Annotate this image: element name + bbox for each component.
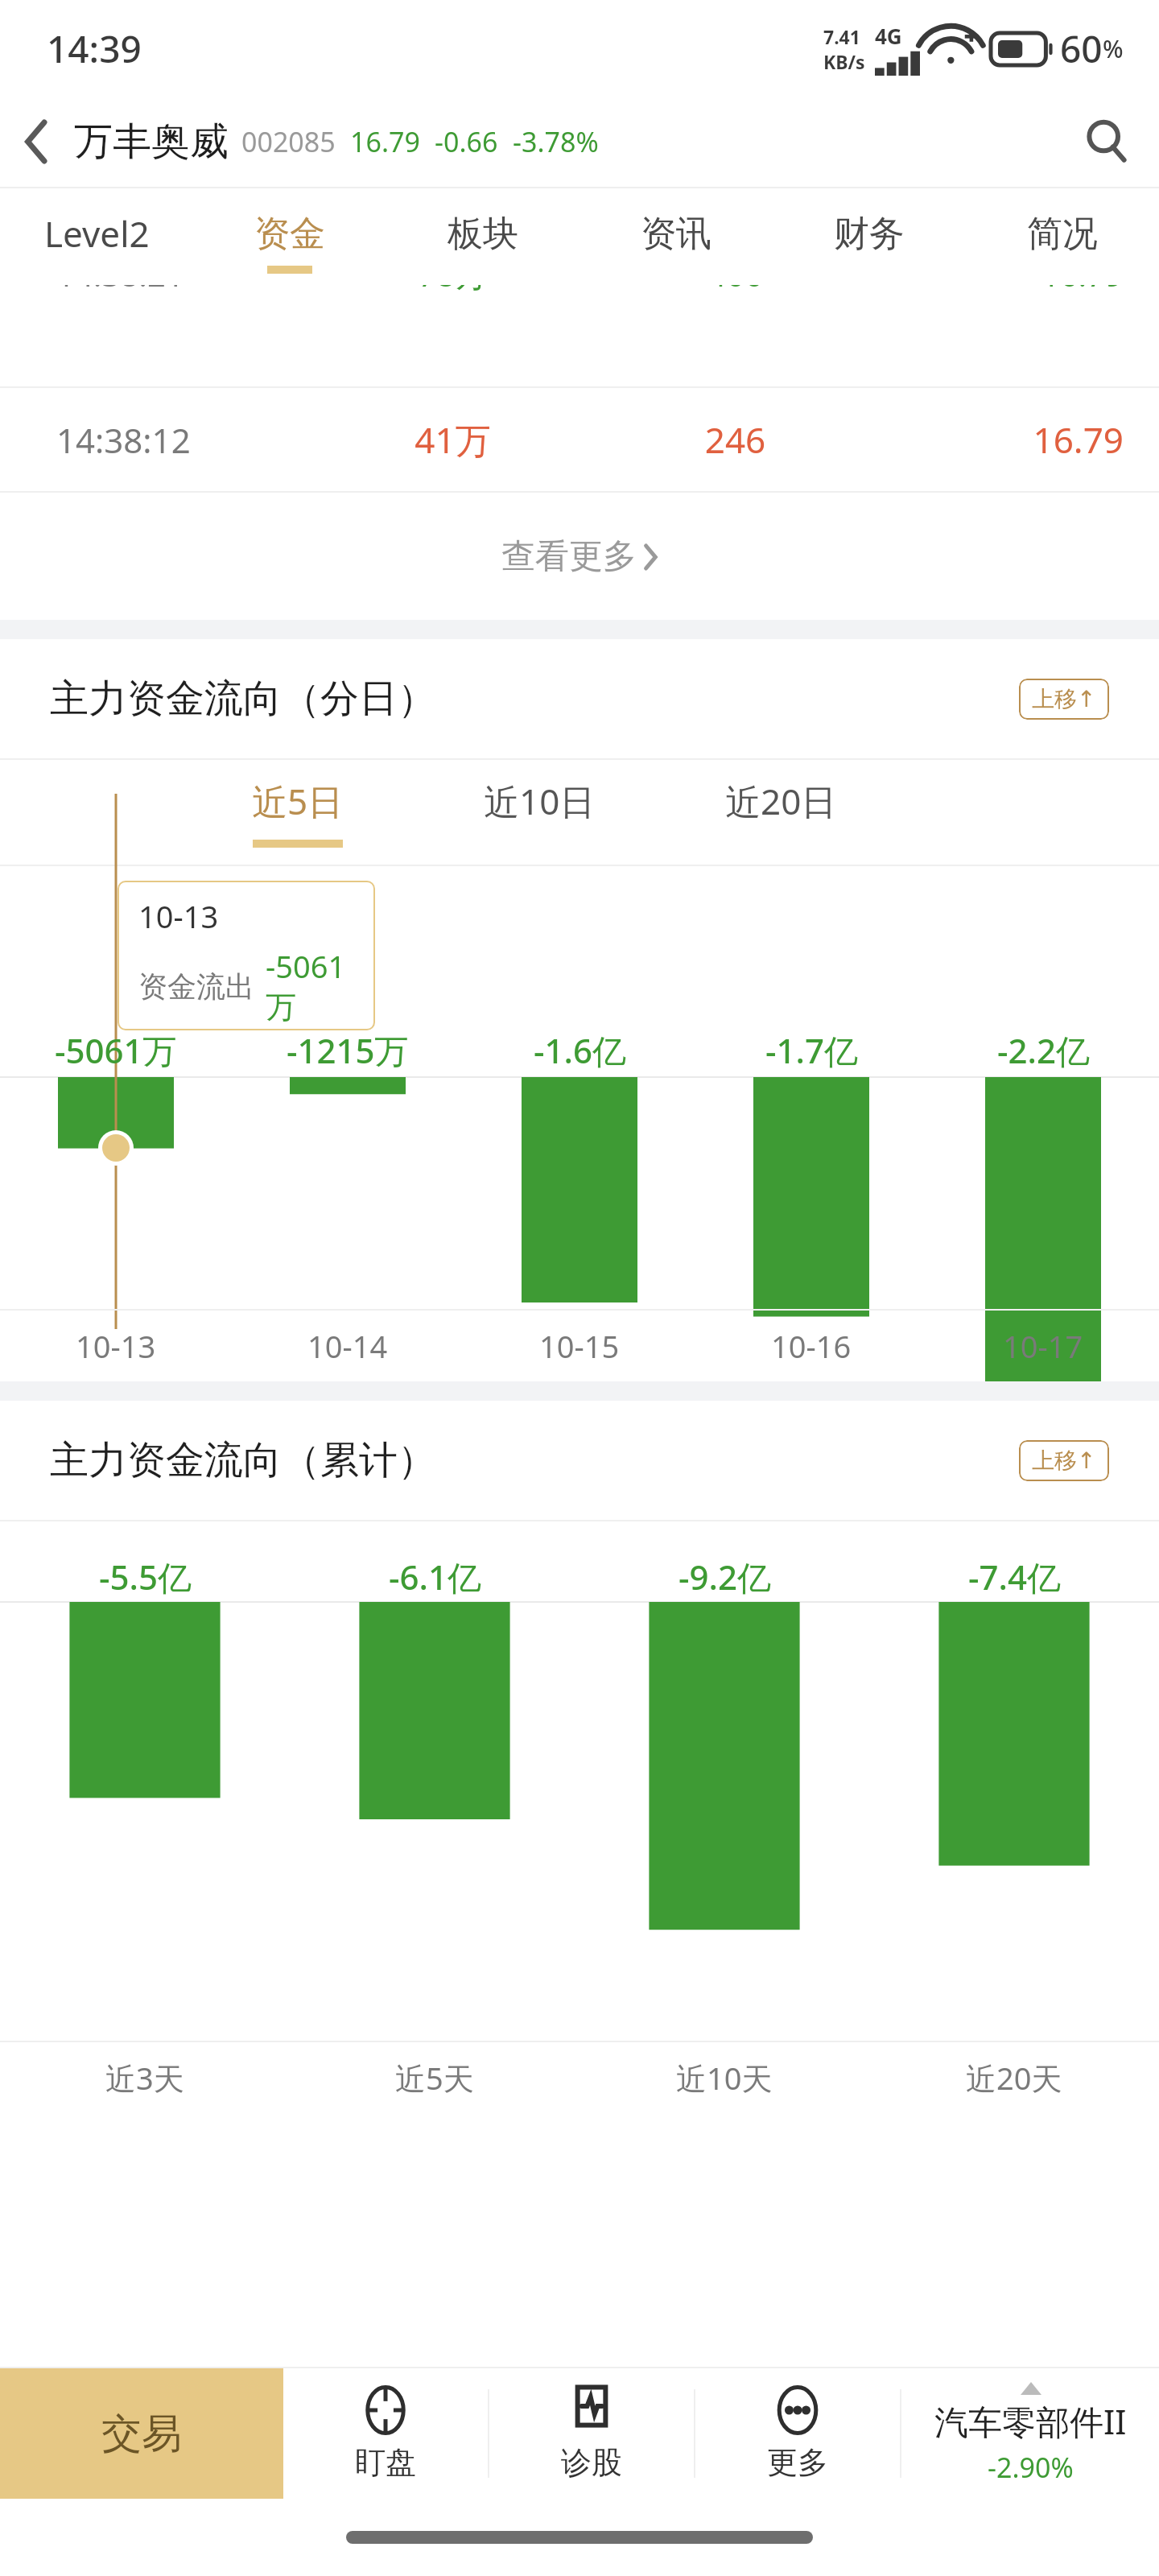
staticText: 诊股 <box>561 2443 622 2482</box>
staticText: 4G <box>875 22 902 50</box>
button[interactable]: 近10日 <box>419 760 660 865</box>
staticText: -5061万 <box>266 945 375 1027</box>
staticText: 246 <box>594 415 876 464</box>
staticText: 近10日 <box>484 777 596 825</box>
staticText: 002085 <box>241 123 336 160</box>
staticText: -1215万 <box>287 1027 409 1073</box>
staticText: -5.5亿 <box>99 1554 192 1600</box>
button[interactable]: 近5日 <box>177 760 419 865</box>
staticText: 简况 <box>1027 212 1098 256</box>
staticText: 上移↑ <box>1032 685 1096 713</box>
staticText: 万丰奥威 <box>74 118 229 166</box>
staticText: 汽车零部件II <box>934 2398 1127 2444</box>
staticText: 466 <box>594 285 876 295</box>
staticText: Level2 <box>44 209 150 258</box>
button[interactable]: 上移↑ <box>1019 679 1109 720</box>
staticText: 7.41 <box>823 24 860 49</box>
staticText: -5061万 <box>55 1027 177 1073</box>
staticText: 10-13 <box>138 895 219 937</box>
staticText: KB/s <box>823 49 865 74</box>
staticText: 14:39 <box>47 23 142 74</box>
staticText: 10-16 <box>771 1325 852 1367</box>
staticText: 近3天 <box>105 2057 184 2099</box>
staticText: 10-14 <box>307 1325 388 1367</box>
staticText: -0.66 <box>435 123 498 160</box>
staticText: 14:38:12 <box>56 417 311 463</box>
staticText: 资金 <box>254 212 325 256</box>
staticText: 10-17 <box>1003 1325 1083 1367</box>
staticText: 60 <box>1060 23 1103 74</box>
button[interactable]: 盯盘 <box>283 2368 488 2499</box>
button[interactable]: 交易 <box>0 2368 283 2499</box>
button[interactable]: 更多 <box>695 2368 900 2499</box>
staticText: 16.79 <box>876 285 1124 295</box>
button[interactable]: 板块 <box>386 188 579 285</box>
staticText: -6.1亿 <box>389 1554 481 1600</box>
staticText: 10-15 <box>539 1325 620 1367</box>
staticText: 财务 <box>834 212 905 256</box>
button[interactable]: 简况 <box>966 188 1159 285</box>
staticText: -2.90% <box>988 2449 1074 2486</box>
staticText: -2.2亿 <box>997 1027 1090 1073</box>
staticText: 近10天 <box>676 2057 773 2099</box>
button[interactable]: 财务 <box>773 188 966 285</box>
staticText: 主力资金流向（累计） <box>50 1436 436 1484</box>
staticText: -7.4亿 <box>968 1554 1061 1600</box>
staticText: 16.79 <box>350 123 420 160</box>
button[interactable]: 搜索 <box>1054 97 1159 187</box>
staticText: 14:38:21 <box>56 285 311 295</box>
staticText: 板块 <box>448 212 518 256</box>
staticText: -9.2亿 <box>678 1554 771 1600</box>
button[interactable]: Level2 <box>0 188 193 285</box>
button[interactable]: 汽车零部件II <box>901 2368 1159 2499</box>
staticText: 10-13 <box>76 1325 156 1367</box>
staticText: 近20天 <box>966 2057 1062 2099</box>
button[interactable]: 查看更多 <box>0 493 1159 620</box>
staticText: 16.79 <box>876 415 1124 464</box>
button[interactable]: 诊股 <box>489 2368 694 2499</box>
button[interactable]: 资金 <box>193 188 386 285</box>
staticText: 上移↑ <box>1032 1447 1096 1475</box>
staticText: -1.7亿 <box>765 1027 858 1073</box>
staticText: 交易 <box>101 2409 182 2459</box>
staticText: 近5天 <box>395 2057 474 2099</box>
button[interactable]: 上移↑ <box>1019 1440 1109 1481</box>
button[interactable]: 近20日 <box>660 760 901 865</box>
staticText: 盯盘 <box>355 2443 416 2482</box>
staticText: 查看更多 <box>501 535 637 578</box>
staticText: 78万 <box>311 285 594 296</box>
staticText: -3.78% <box>513 123 599 160</box>
staticText: 近20日 <box>725 777 837 825</box>
staticText: 主力资金流向（分日） <box>50 675 436 723</box>
staticText: 41万 <box>311 415 594 464</box>
button[interactable]: 返回 <box>0 97 74 187</box>
staticText: 资金流出 <box>138 968 254 1005</box>
button[interactable]: 资讯 <box>579 188 773 285</box>
staticText: 资讯 <box>641 212 711 256</box>
staticText: % <box>1103 32 1124 65</box>
staticText: 近5日 <box>252 777 344 825</box>
staticText: 更多 <box>767 2443 828 2482</box>
staticText: -1.6亿 <box>534 1027 626 1073</box>
